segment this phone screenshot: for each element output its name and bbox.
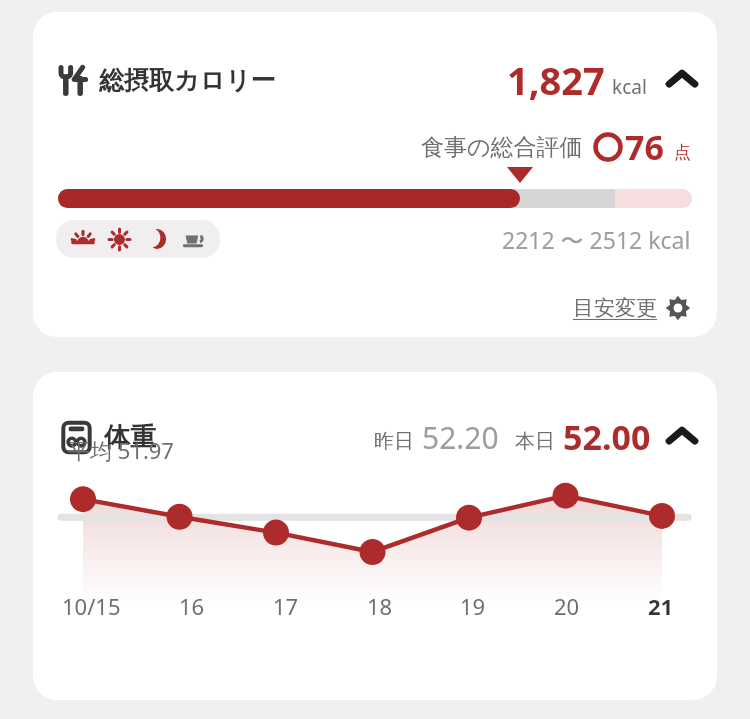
- staticText: 食事の総合評価: [421, 133, 583, 162]
- staticText: 体重: [104, 421, 156, 454]
- staticText: 17: [273, 591, 299, 621]
- staticText: 20: [554, 591, 580, 621]
- staticText: 10/15: [62, 591, 121, 621]
- button[interactable]: 折りたたむ: [663, 61, 701, 99]
- staticText: kcal: [612, 74, 647, 100]
- staticText: 1,827: [507, 54, 605, 106]
- staticText: 本日: [515, 429, 555, 454]
- staticText: 総摂取カロリー: [99, 65, 276, 96]
- staticText: 2212 〜 2512 kcal: [502, 224, 691, 255]
- staticText: 目安変更: [573, 295, 657, 321]
- staticText: 点: [674, 142, 691, 163]
- button[interactable]: [56, 220, 220, 258]
- staticText: 52.20: [422, 417, 499, 458]
- staticText: 19: [460, 591, 486, 621]
- staticText: 52.00: [563, 414, 651, 460]
- staticText: 16: [179, 591, 205, 621]
- staticText: 18: [367, 591, 393, 621]
- staticText: 76: [625, 124, 664, 170]
- button[interactable]: 折りたたむ: [663, 418, 701, 456]
- staticText: 昨日: [374, 429, 414, 454]
- staticText: 21: [648, 591, 674, 621]
- staticText: 平均 51.97: [68, 435, 174, 465]
- button[interactable]: 目安変更: [567, 289, 697, 327]
